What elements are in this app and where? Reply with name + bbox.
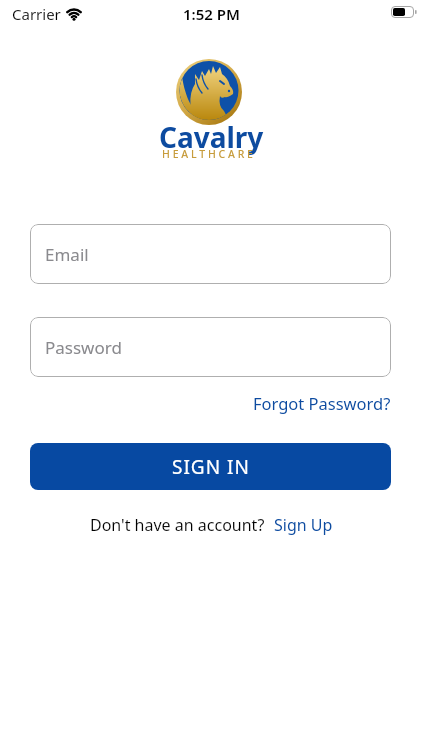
button[interactable]: Password <box>30 317 391 377</box>
staticText: Don't have an account? <box>90 514 265 536</box>
staticText: Email <box>45 243 89 266</box>
staticText: Carrier <box>12 4 61 24</box>
staticText: HEALTHCARE <box>162 147 256 161</box>
button[interactable]: Forgot Password? <box>253 392 391 414</box>
staticText: 1:52 PM <box>183 4 240 24</box>
button[interactable]: Sign Up <box>274 514 333 536</box>
staticText: Cavalry <box>159 118 264 156</box>
staticText: SIGN IN <box>172 454 250 480</box>
staticText: Password <box>45 336 122 359</box>
button[interactable]: SIGN IN <box>30 443 391 490</box>
button[interactable]: Email <box>30 224 391 284</box>
